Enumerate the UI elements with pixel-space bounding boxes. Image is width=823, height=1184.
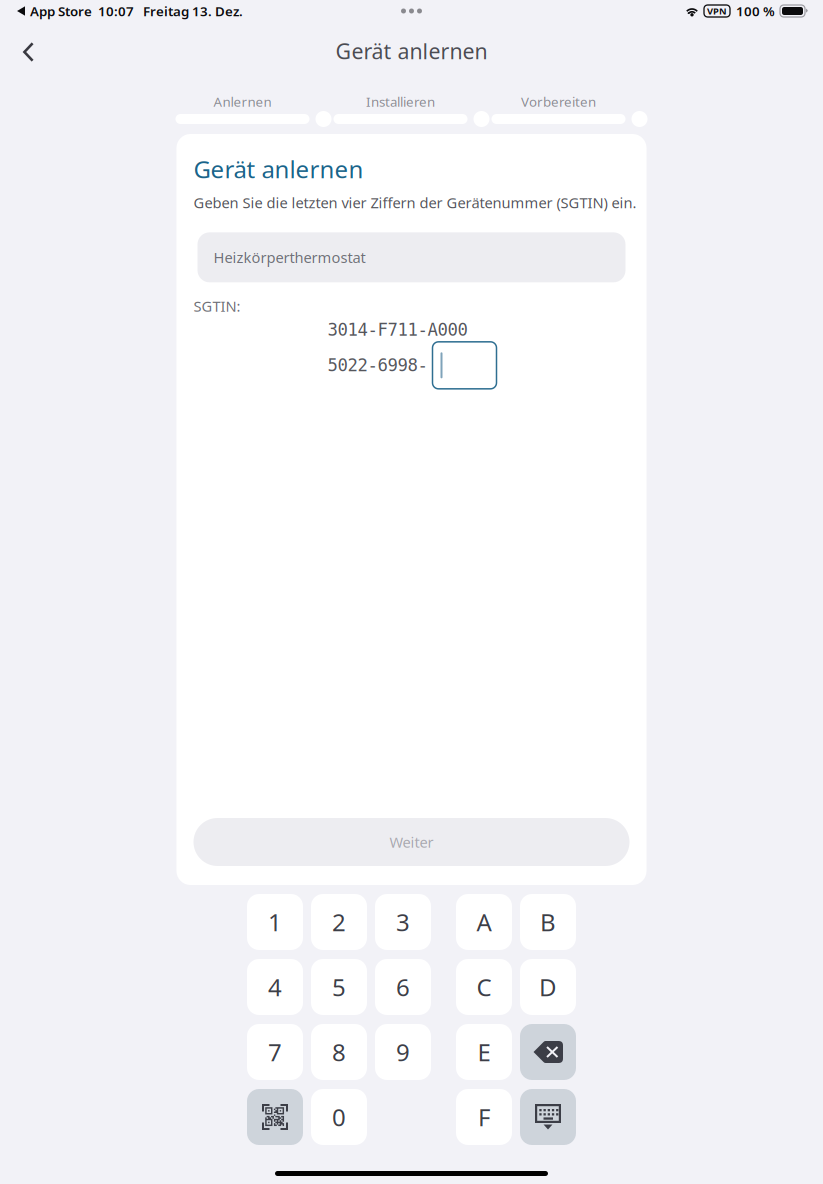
staticText: App Store bbox=[30, 2, 92, 20]
button[interactable]: 6 bbox=[375, 959, 431, 1015]
button[interactable]: 7 bbox=[247, 1024, 303, 1080]
staticText: E bbox=[477, 1036, 490, 1068]
button[interactable]: QR-Code scannen bbox=[247, 1089, 303, 1145]
staticText: 3 bbox=[396, 906, 410, 938]
button[interactable]: 3 bbox=[375, 894, 431, 950]
button[interactable]: 2 bbox=[311, 894, 367, 950]
staticText: Heizkörperthermostat bbox=[213, 248, 365, 267]
button[interactable]: 1 bbox=[247, 894, 303, 950]
staticText: Installieren bbox=[366, 93, 435, 110]
staticText: B bbox=[540, 906, 556, 938]
staticText: 5 bbox=[332, 971, 346, 1003]
staticText: 3014-F711-A000 bbox=[327, 320, 467, 340]
staticText: Vorbereiten bbox=[521, 93, 596, 110]
staticText: Anlernen bbox=[213, 93, 271, 110]
staticText: 100 % bbox=[736, 2, 775, 20]
staticText: F bbox=[478, 1101, 490, 1133]
button[interactable]: Tastatur ausblenden bbox=[520, 1089, 576, 1145]
staticText: Geben Sie die letzten vier Ziffern der G… bbox=[193, 193, 636, 212]
staticText: A bbox=[476, 906, 491, 938]
staticText: Gerät anlernen bbox=[335, 37, 487, 65]
button[interactable]: 5 bbox=[311, 959, 367, 1015]
staticText: C bbox=[476, 971, 491, 1003]
staticText: 0 bbox=[332, 1101, 346, 1133]
staticText: 6 bbox=[396, 971, 410, 1003]
button[interactable]: Zurück bbox=[0, 32, 48, 76]
button[interactable]: D bbox=[520, 959, 576, 1015]
button[interactable]: Löschen bbox=[520, 1024, 576, 1080]
button[interactable]: 0 bbox=[311, 1089, 367, 1145]
staticText: 10:07 bbox=[98, 2, 134, 20]
staticText: 4 bbox=[268, 971, 282, 1003]
staticText: 7 bbox=[268, 1036, 282, 1068]
staticText: VPN bbox=[707, 5, 727, 17]
staticText: 1 bbox=[268, 906, 282, 938]
staticText: 2 bbox=[332, 906, 346, 938]
staticText: Weiter bbox=[389, 832, 433, 852]
button[interactable]: 4 bbox=[247, 959, 303, 1015]
staticText: Freitag 13. Dez. bbox=[143, 2, 243, 20]
button[interactable]: E bbox=[456, 1024, 512, 1080]
staticText: SGTIN: bbox=[193, 296, 240, 316]
button[interactable]: 9 bbox=[375, 1024, 431, 1080]
button[interactable]: Weiter bbox=[193, 818, 629, 866]
button[interactable]: C bbox=[456, 959, 512, 1015]
staticText: Gerät anlernen bbox=[193, 153, 363, 185]
button[interactable]: 8 bbox=[311, 1024, 367, 1080]
staticText: 8 bbox=[332, 1036, 346, 1068]
staticText: D bbox=[539, 971, 557, 1003]
button[interactable]: F bbox=[456, 1089, 512, 1145]
staticText: 9 bbox=[396, 1036, 410, 1068]
staticText: 5022-6998- bbox=[327, 355, 427, 375]
button[interactable]: A bbox=[456, 894, 512, 950]
button[interactable]: B bbox=[520, 894, 576, 950]
